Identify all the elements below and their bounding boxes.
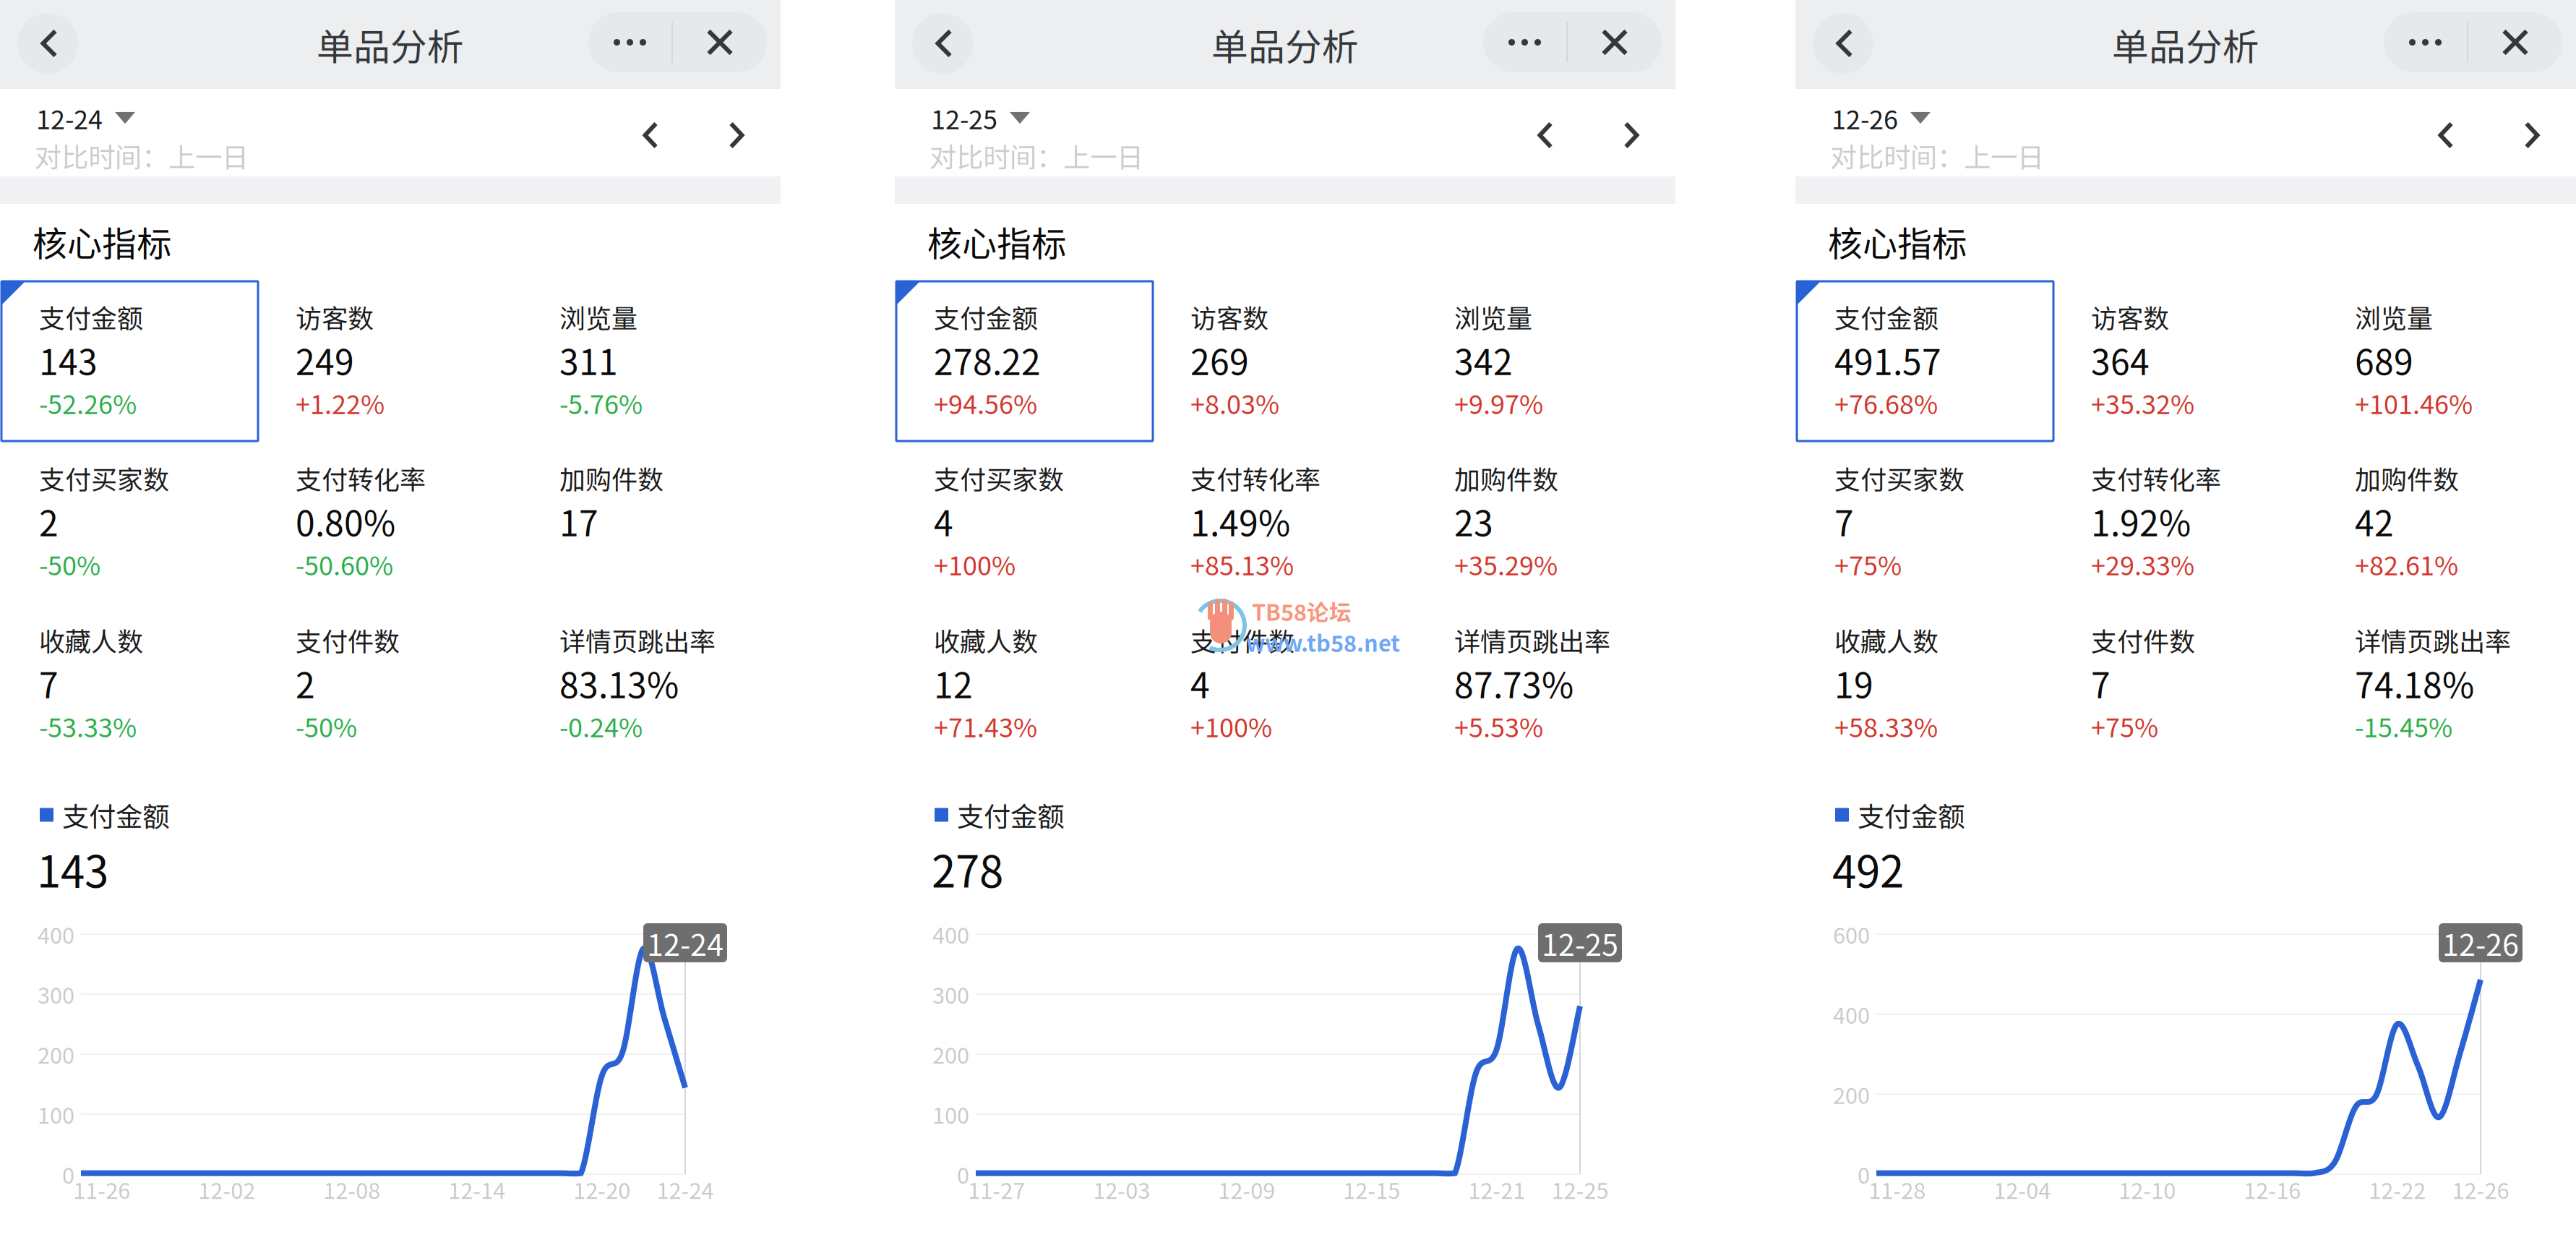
button[interactable]: More options <box>1483 12 1566 72</box>
staticText: -5.76% <box>559 384 643 422</box>
button[interactable]: Next day <box>1598 102 1665 168</box>
staticText: 详情页跳出率 <box>2355 621 2511 659</box>
staticText: 249 <box>296 335 354 385</box>
staticText: 浏览量 <box>559 298 637 336</box>
button[interactable]: More options <box>2384 12 2467 72</box>
staticText: 17 <box>559 496 598 546</box>
staticText: +100% <box>1190 707 1272 745</box>
button[interactable]: 12-26 <box>1832 99 1931 137</box>
button[interactable]: 支付件数 <box>2091 621 2337 737</box>
button[interactable]: 支付金额 <box>39 298 285 414</box>
button[interactable]: Next day <box>2499 102 2565 168</box>
button[interactable]: More options <box>588 12 671 72</box>
button[interactable]: 访客数 <box>2091 298 2337 414</box>
button[interactable]: 访客数 <box>1190 298 1436 414</box>
button[interactable]: 访客数 <box>296 298 541 414</box>
staticText: -53.33% <box>39 707 137 745</box>
button[interactable]: Back <box>1809 9 1877 77</box>
button[interactable]: 支付买家数 <box>39 459 285 575</box>
staticText: 12-20 <box>573 1173 630 1205</box>
button[interactable]: 详情页跳出率 <box>559 621 805 737</box>
button[interactable]: 支付转化率 <box>296 459 541 575</box>
button[interactable]: Back <box>14 9 82 77</box>
button[interactable]: Previous day <box>1512 102 1579 168</box>
staticText: 0 <box>957 1158 969 1190</box>
staticText: +58.33% <box>1834 707 1938 745</box>
staticText: 12-16 <box>2244 1173 2301 1205</box>
button[interactable]: 加购件数 <box>1454 459 1700 575</box>
staticText: 491.57 <box>1834 335 1941 385</box>
staticText: 12-04 <box>1994 1173 2051 1205</box>
staticText: 100 <box>932 1098 969 1130</box>
staticText: 83.13% <box>559 658 679 708</box>
staticText: 浏览量 <box>1454 298 1532 336</box>
staticText: 对比时间：上一日 <box>1830 136 2044 175</box>
button[interactable]: Back <box>909 9 976 77</box>
button[interactable]: 加购件数 <box>2355 459 2576 575</box>
staticText: 12-25 <box>931 99 997 137</box>
staticText: -50% <box>39 545 100 583</box>
staticText: 支付转化率 <box>1190 459 1321 497</box>
staticText: 11-27 <box>968 1173 1025 1205</box>
staticText: 支付件数 <box>1190 621 1295 659</box>
staticText: +76.68% <box>1834 384 1938 422</box>
staticText: -52.26% <box>39 384 137 422</box>
staticText: +1.22% <box>296 384 385 422</box>
staticText: 311 <box>559 335 618 385</box>
button[interactable]: 浏览量 <box>1454 298 1700 414</box>
staticText: 12 <box>934 658 973 708</box>
button[interactable]: 收藏人数 <box>39 621 285 737</box>
staticText: 0 <box>1858 1158 1870 1190</box>
button[interactable]: 浏览量 <box>559 298 805 414</box>
button[interactable]: 加购件数 <box>559 459 805 575</box>
staticText: 支付金额 <box>934 298 1038 336</box>
staticText: 278 <box>932 837 1003 900</box>
staticText: 2 <box>39 496 59 546</box>
staticText: 4 <box>1190 658 1210 708</box>
button[interactable]: 支付买家数 <box>1834 459 2080 575</box>
staticText: 加购件数 <box>1454 459 1558 497</box>
staticText: 加购件数 <box>2355 459 2459 497</box>
button[interactable]: Previous day <box>617 102 684 168</box>
staticText: 详情页跳出率 <box>559 621 716 659</box>
button[interactable]: 支付金额 <box>934 298 1180 414</box>
button[interactable]: Close <box>673 12 767 72</box>
staticText: 核心指标 <box>927 216 1066 266</box>
staticText: +9.97% <box>1454 384 1543 422</box>
button[interactable]: Next day <box>703 102 770 168</box>
staticText: 19 <box>1834 658 1873 708</box>
staticText: +75% <box>1834 545 1902 583</box>
button[interactable]: 12-24 <box>36 99 135 137</box>
button[interactable]: 详情页跳出率 <box>2355 621 2576 737</box>
button[interactable]: 收藏人数 <box>1834 621 2080 737</box>
button[interactable]: Previous day <box>2413 102 2479 168</box>
staticText: 12-10 <box>2119 1173 2176 1205</box>
staticText: 收藏人数 <box>934 621 1038 659</box>
staticText: 2 <box>296 658 315 708</box>
button[interactable]: 详情页跳出率 <box>1454 621 1700 737</box>
staticText: 0.80% <box>296 496 395 546</box>
staticText: -0.24% <box>559 707 643 745</box>
button[interactable]: 支付转化率 <box>1190 459 1436 575</box>
staticText: 12-26 <box>2442 921 2519 964</box>
button[interactable]: 支付买家数 <box>934 459 1180 575</box>
staticText: 12-25 <box>1542 921 1618 964</box>
button[interactable]: 支付件数 <box>296 621 541 737</box>
staticText: 143 <box>37 837 108 900</box>
staticText: 对比时间：上一日 <box>929 136 1143 175</box>
button[interactable]: 支付件数 <box>1190 621 1436 737</box>
button[interactable]: 浏览量 <box>2355 298 2576 414</box>
button[interactable]: 12-25 <box>931 99 1030 137</box>
button[interactable]: 收藏人数 <box>934 621 1180 737</box>
button[interactable]: 支付转化率 <box>2091 459 2337 575</box>
button[interactable]: 支付金额 <box>1834 298 2080 414</box>
staticText: 加购件数 <box>559 459 664 497</box>
button[interactable]: Close <box>1568 12 1662 72</box>
staticText: 访客数 <box>296 298 374 336</box>
staticText: +100% <box>934 545 1016 583</box>
staticText: 400 <box>38 918 74 950</box>
staticText: 7 <box>39 658 59 708</box>
button[interactable]: Close <box>2468 12 2562 72</box>
staticText: 12-25 <box>1551 1173 1609 1205</box>
staticText: +101.46% <box>2355 384 2473 422</box>
